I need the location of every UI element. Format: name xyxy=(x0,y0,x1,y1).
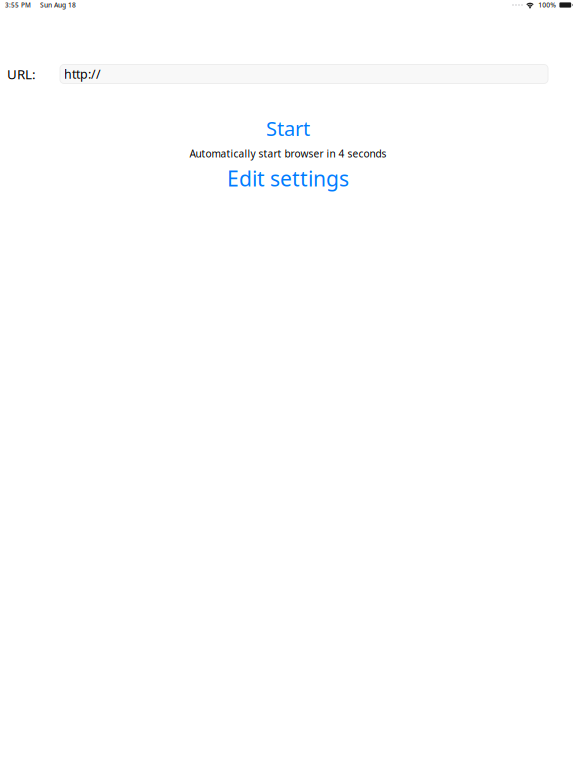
button[interactable]: http:// xyxy=(60,64,548,83)
staticText: Start xyxy=(266,114,310,142)
staticText: http:// xyxy=(64,66,101,82)
staticText: Sun Aug 18 xyxy=(40,0,76,10)
button[interactable]: Edit settings xyxy=(227,164,349,193)
staticText: Automatically start browser in 4 seconds xyxy=(189,147,386,160)
staticText: URL: xyxy=(7,65,36,83)
staticText: 3:55 PM xyxy=(5,1,31,9)
staticText: Edit settings xyxy=(227,164,349,193)
staticText: 100% xyxy=(538,0,556,10)
button[interactable]: Start xyxy=(266,114,310,142)
